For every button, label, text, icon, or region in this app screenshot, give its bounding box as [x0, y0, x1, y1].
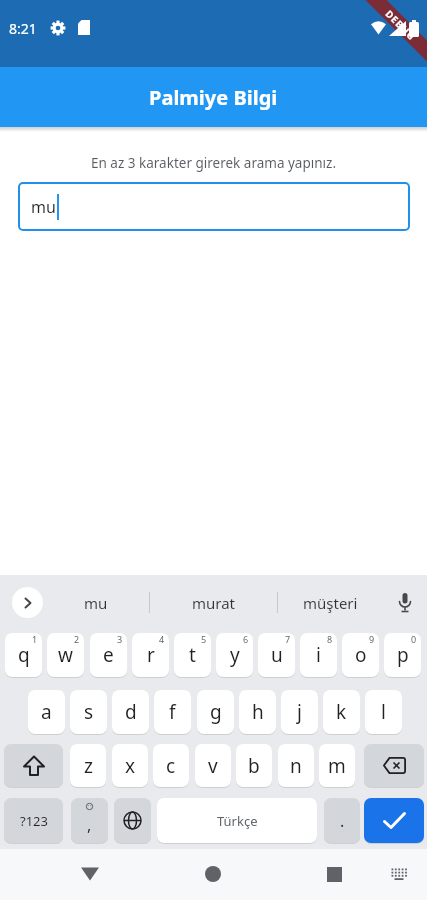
staticText: ,: [87, 814, 92, 836]
staticText: mu: [84, 593, 108, 613]
button[interactable]: u: [258, 633, 295, 677]
staticText: w: [58, 642, 73, 668]
button[interactable]: [76, 860, 104, 888]
button[interactable]: m: [319, 744, 355, 787]
button[interactable]: n: [278, 744, 314, 787]
button[interactable]: l: [365, 690, 402, 734]
staticText: DEBUG: [383, 7, 419, 43]
button[interactable]: [364, 744, 424, 787]
button[interactable]: [385, 862, 413, 886]
button[interactable]: ?123: [4, 798, 63, 843]
staticText: 8: [327, 633, 333, 645]
button[interactable]: .: [324, 798, 360, 843]
button[interactable]: t: [174, 633, 211, 677]
staticText: p: [397, 642, 409, 668]
button[interactable]: o: [342, 633, 379, 677]
staticText: f: [169, 699, 176, 725]
button[interactable]: v: [195, 744, 231, 787]
staticText: 2: [74, 633, 80, 645]
staticText: 0: [411, 633, 417, 645]
button[interactable]: [199, 860, 227, 888]
staticText: r: [147, 642, 155, 668]
button[interactable]: e: [90, 633, 127, 677]
staticText: 4: [159, 633, 165, 645]
button[interactable]: [364, 798, 424, 843]
staticText: 8:21: [9, 19, 37, 38]
button[interactable]: a: [28, 690, 65, 734]
button[interactable]: z: [70, 744, 106, 787]
button[interactable]: p: [384, 633, 421, 677]
button[interactable]: h: [239, 690, 276, 734]
staticText: u: [271, 642, 283, 668]
staticText: Palmiye Bilgi: [149, 84, 278, 111]
staticText: En az 3 karakter girerek arama yapınız.: [91, 154, 336, 172]
staticText: m: [328, 753, 346, 779]
staticText: 7: [285, 633, 291, 645]
button[interactable]: i: [300, 633, 337, 677]
staticText: ?123: [20, 812, 48, 830]
button[interactable]: c: [153, 744, 189, 787]
button[interactable]: [392, 589, 418, 617]
staticText: t: [189, 642, 196, 668]
staticText: k: [336, 699, 347, 725]
button[interactable]: mu: [18, 182, 410, 231]
button[interactable]: x: [112, 744, 148, 787]
staticText: o: [355, 642, 367, 668]
button[interactable]: s: [70, 690, 107, 734]
button[interactable]: d: [112, 690, 149, 734]
staticText: c: [166, 753, 176, 779]
button[interactable]: ,: [71, 798, 108, 843]
staticText: .: [340, 810, 345, 832]
staticText: q: [18, 642, 30, 668]
staticText: d: [125, 699, 137, 725]
button[interactable]: f: [154, 690, 191, 734]
button[interactable]: g: [197, 690, 234, 734]
staticText: müşteri: [303, 593, 358, 613]
staticText: i: [316, 642, 321, 668]
button[interactable]: murat: [160, 588, 267, 618]
staticText: j: [297, 699, 302, 725]
staticText: a: [41, 699, 52, 725]
staticText: 5: [201, 633, 207, 645]
staticText: murat: [192, 593, 236, 613]
button[interactable]: [114, 798, 151, 843]
button[interactable]: j: [281, 690, 318, 734]
button[interactable]: w: [47, 633, 84, 677]
button[interactable]: r: [132, 633, 169, 677]
button[interactable]: [320, 860, 348, 888]
staticText: mu: [31, 196, 56, 218]
staticText: s: [84, 699, 94, 725]
button[interactable]: müşteri: [287, 588, 374, 618]
staticText: 1: [32, 633, 38, 645]
staticText: h: [252, 699, 264, 725]
button[interactable]: q: [5, 633, 42, 677]
staticText: x: [125, 753, 136, 779]
staticText: l: [381, 699, 386, 725]
staticText: y: [230, 642, 240, 668]
staticText: 3: [117, 633, 123, 645]
staticText: g: [210, 699, 222, 725]
staticText: Türkçe: [217, 812, 258, 830]
button[interactable]: [12, 587, 43, 618]
staticText: e: [103, 642, 114, 668]
button[interactable]: Türkçe: [157, 798, 317, 843]
button[interactable]: k: [323, 690, 360, 734]
staticText: 9: [369, 633, 375, 645]
button[interactable]: [4, 744, 63, 787]
button[interactable]: mu: [60, 588, 131, 618]
staticText: 6: [243, 633, 249, 645]
button[interactable]: y: [216, 633, 253, 677]
staticText: z: [84, 753, 93, 779]
staticText: n: [290, 753, 302, 779]
staticText: b: [248, 753, 260, 779]
staticText: v: [208, 753, 218, 779]
button[interactable]: b: [236, 744, 272, 787]
